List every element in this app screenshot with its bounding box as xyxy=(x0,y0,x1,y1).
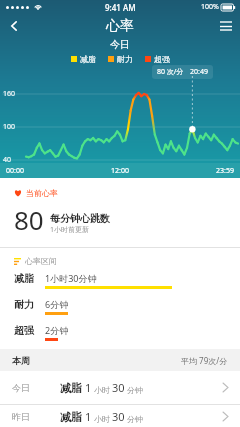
staticText: 20:49 xyxy=(190,67,208,77)
staticText: 当前心率 xyxy=(26,188,58,198)
staticText: 1 xyxy=(85,409,92,424)
staticText: 分钟 xyxy=(127,414,143,424)
staticText: 6分钟 xyxy=(45,298,69,310)
staticText: 100% xyxy=(201,2,219,12)
staticText: 30 xyxy=(112,409,125,424)
staticText: 减脂 xyxy=(80,54,96,64)
staticText: 12:00 xyxy=(111,166,129,176)
staticText: 1小时前更新 xyxy=(50,225,90,235)
staticText: 超强 xyxy=(154,54,170,64)
staticText: 40 xyxy=(3,155,12,165)
button[interactable]: 今日 xyxy=(0,371,240,404)
staticText: 心率 xyxy=(106,17,134,35)
staticText: 心率区间 xyxy=(25,256,57,266)
staticText: 分钟 xyxy=(127,385,143,395)
staticText: 减脂 xyxy=(60,381,82,395)
staticText: 30 xyxy=(112,380,125,395)
staticText: 本周 xyxy=(12,355,30,366)
staticText: 80 xyxy=(14,202,44,237)
button[interactable]: 昨日 xyxy=(0,405,240,427)
staticText: 小时 xyxy=(94,414,110,424)
staticText: 平均 79次/分 xyxy=(181,355,228,366)
staticText: 减脂 xyxy=(60,410,82,424)
staticText: 80 次/分 xyxy=(157,67,184,77)
staticText: 昨日 xyxy=(12,411,50,422)
staticText: 1小时30分钟 xyxy=(45,272,97,284)
staticText: 今日 xyxy=(110,38,130,51)
staticText: 耐力 xyxy=(14,298,40,311)
staticText: 23:59 xyxy=(216,166,234,176)
staticText: 今日 xyxy=(12,382,50,393)
staticText: 00:00 xyxy=(6,166,24,176)
staticText: 2分钟 xyxy=(45,324,69,336)
staticText: 小时 xyxy=(94,385,110,395)
staticText: 每分钟心跳数 xyxy=(50,212,110,225)
button[interactable]: Back xyxy=(0,14,28,38)
staticText: 耐力 xyxy=(117,54,133,64)
staticText: 100 xyxy=(3,122,16,132)
staticText: 160 xyxy=(3,89,16,99)
staticText: 1 xyxy=(85,380,92,395)
button[interactable]: Menu xyxy=(212,14,240,38)
staticText: 减脂 xyxy=(14,272,40,285)
staticText: 9:41 AM xyxy=(105,2,136,13)
staticText: 超强 xyxy=(14,324,40,337)
